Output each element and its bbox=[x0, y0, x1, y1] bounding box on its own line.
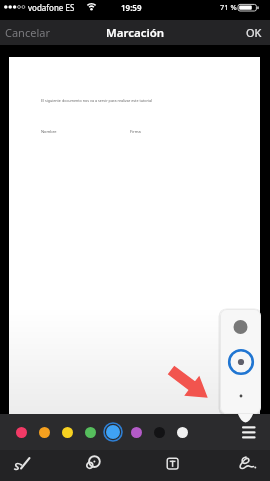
button[interactable] bbox=[131, 427, 142, 438]
button[interactable] bbox=[239, 423, 259, 442]
staticText: vodafone ES bbox=[28, 2, 75, 13]
staticText: Cancelar bbox=[5, 25, 50, 40]
button[interactable] bbox=[84, 452, 106, 474]
button[interactable] bbox=[177, 427, 188, 438]
button[interactable] bbox=[103, 422, 123, 442]
button[interactable] bbox=[164, 455, 182, 473]
staticText: 71 % bbox=[220, 2, 237, 12]
staticText: 19:59 bbox=[121, 2, 142, 13]
button[interactable] bbox=[220, 309, 261, 414]
button[interactable] bbox=[85, 427, 96, 438]
staticText: Nombre bbox=[41, 129, 57, 134]
button[interactable]: Cancelar bbox=[5, 25, 50, 40]
staticText: Marcación bbox=[106, 25, 165, 41]
button[interactable] bbox=[16, 427, 27, 438]
button[interactable]: OK bbox=[246, 25, 262, 40]
button[interactable] bbox=[39, 427, 50, 438]
button[interactable] bbox=[154, 427, 165, 438]
button[interactable] bbox=[234, 452, 260, 476]
staticText: Firma bbox=[130, 129, 141, 134]
staticText: OK bbox=[246, 25, 262, 40]
staticText: El siguiente documento nos va a servir p… bbox=[41, 98, 153, 103]
button[interactable] bbox=[11, 453, 35, 475]
button[interactable] bbox=[62, 427, 73, 438]
